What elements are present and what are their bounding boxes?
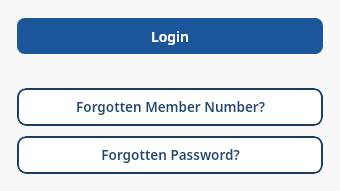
staticText: Login <box>151 27 189 46</box>
staticText: Forgotten Member Number? <box>76 98 265 116</box>
button[interactable]: Forgotten Password? <box>17 136 323 174</box>
staticText: Forgotten Password? <box>101 146 240 164</box>
button[interactable]: Forgotten Member Number? <box>17 88 323 126</box>
button[interactable]: Login <box>17 18 323 54</box>
